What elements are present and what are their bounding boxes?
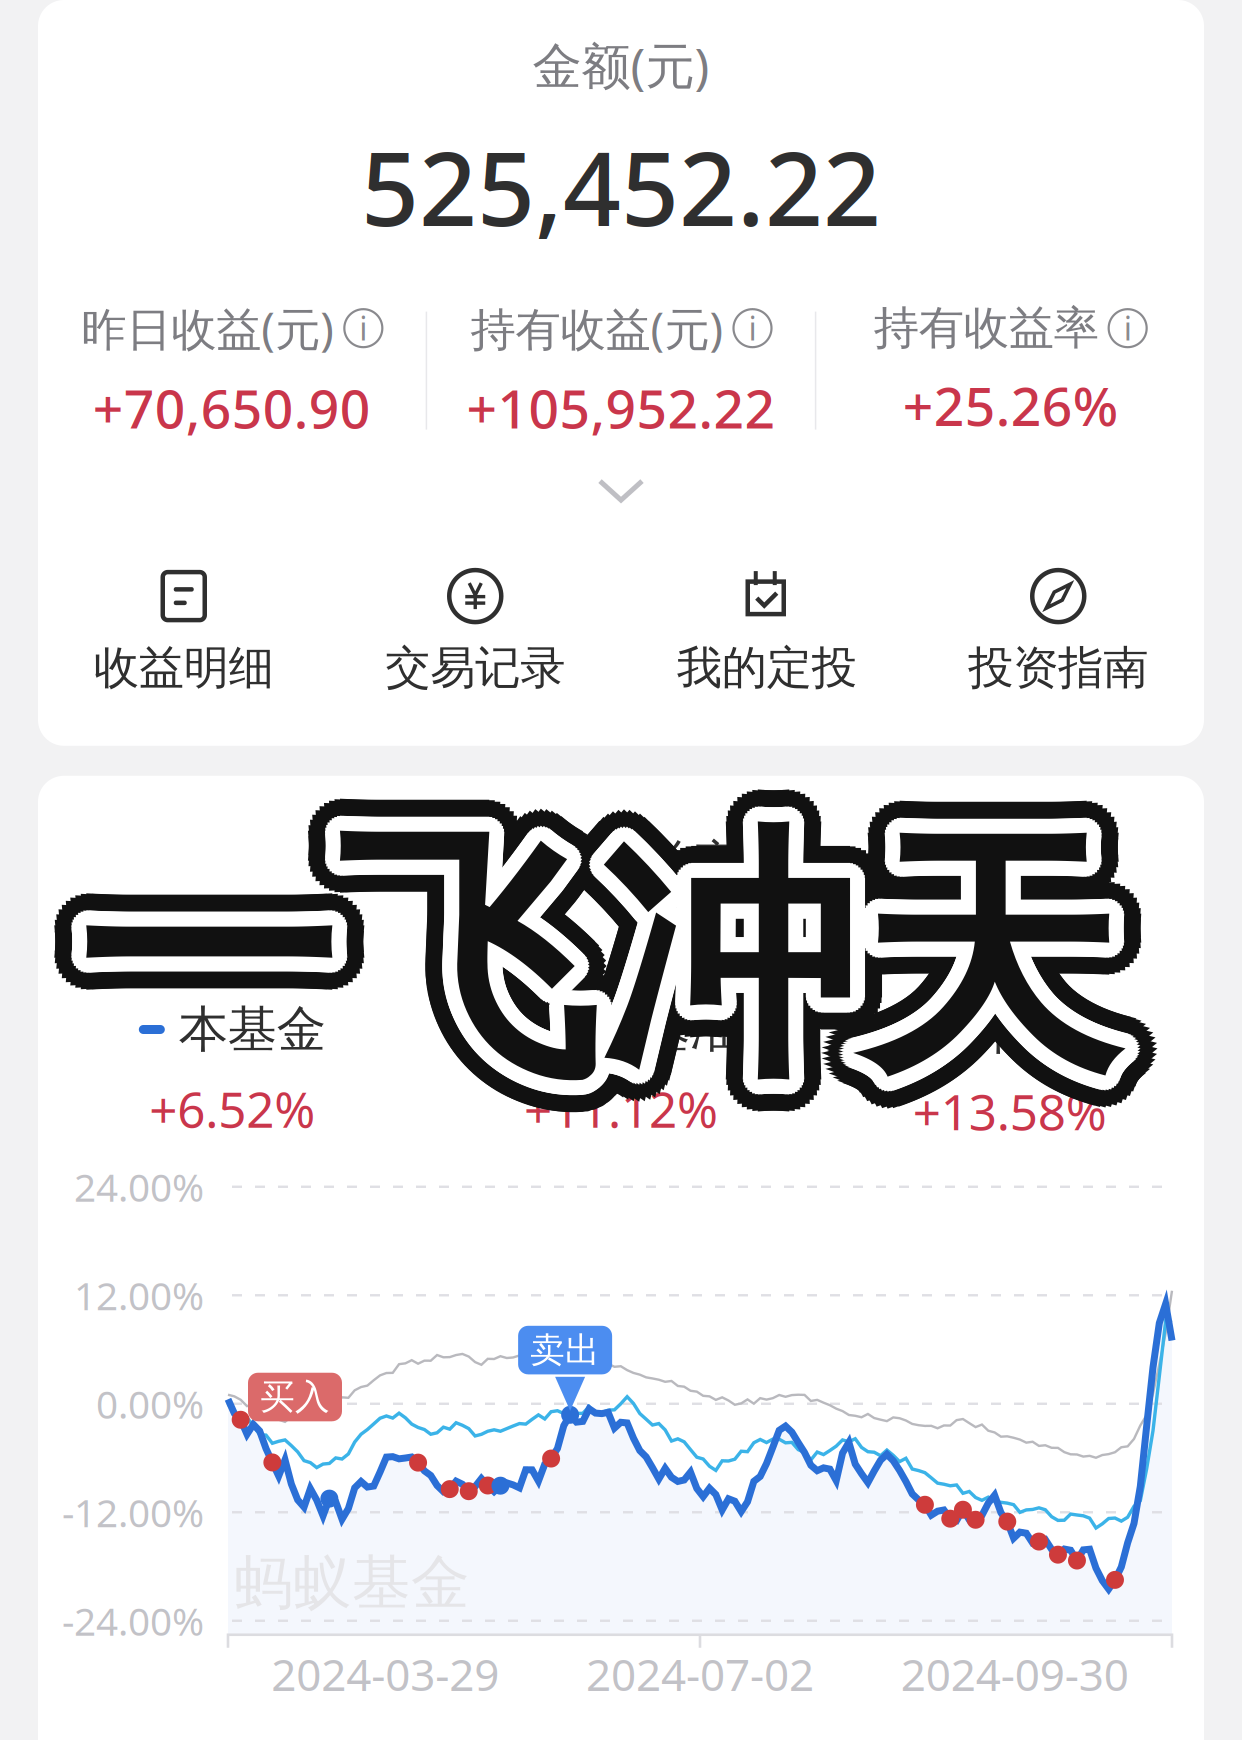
- staticText: 一飞冲天: [47, 784, 1091, 1105]
- staticText: 收益明细: [94, 640, 274, 696]
- staticText: 一飞冲天: [64, 799, 1108, 1120]
- staticText: 一飞冲天: [107, 800, 1151, 1121]
- staticText: 一飞冲天: [96, 775, 1140, 1096]
- staticText: 12.00%: [74, 1270, 204, 1321]
- staticText: 一飞冲天: [81, 797, 1125, 1118]
- button[interactable]: 收益明细: [38, 568, 329, 696]
- staticText: 2024-07-02: [586, 1645, 814, 1703]
- staticText: 一飞冲天: [96, 824, 1140, 1145]
- staticText: 一飞冲天: [69, 768, 1113, 1089]
- staticText: 一飞冲天: [99, 821, 1143, 1142]
- staticText: 一飞冲天: [85, 817, 1129, 1138]
- staticText: 一飞冲天: [98, 788, 1142, 1109]
- staticText: 一飞冲天: [79, 794, 1123, 1115]
- staticText: 一飞冲天: [47, 816, 1091, 1137]
- staticText: 一飞冲天: [65, 804, 1109, 1125]
- staticText: +70,650.90: [93, 372, 371, 443]
- staticText: 一飞冲天: [83, 787, 1127, 1108]
- staticText: 一飞冲天: [76, 789, 1120, 1110]
- staticText: 一飞冲天: [75, 768, 1119, 1089]
- staticText: 一飞冲天: [68, 801, 1112, 1122]
- staticText: 一飞冲天: [90, 803, 1134, 1124]
- staticText: 一飞冲天: [87, 823, 1131, 1144]
- staticText: 一飞冲天: [77, 803, 1121, 1124]
- staticText: 一飞冲天: [59, 772, 1103, 1093]
- staticText: 一飞冲天: [77, 774, 1121, 1095]
- staticText: 一飞冲天: [69, 831, 1113, 1152]
- staticText: -24.00%: [62, 1595, 204, 1646]
- staticText: 一飞冲天: [86, 811, 1130, 1132]
- staticText: 一飞冲天: [59, 788, 1103, 1109]
- staticText: 一飞冲天: [78, 806, 1122, 1127]
- staticText: 一飞冲天: [61, 794, 1105, 1115]
- staticText: 一飞冲天: [55, 817, 1099, 1138]
- staticText: 一飞冲天: [65, 796, 1109, 1117]
- staticText: 一飞冲天: [90, 787, 1134, 1108]
- staticText: 一飞冲天: [63, 823, 1107, 1144]
- staticText: 一飞冲天: [92, 820, 1136, 1141]
- staticText: 一飞冲天: [74, 807, 1118, 1128]
- staticText: +105,952.22: [466, 372, 775, 443]
- staticText: 一飞冲天: [87, 808, 1131, 1129]
- staticText: i: [1124, 307, 1132, 349]
- staticText: 一飞冲天: [65, 782, 1109, 1103]
- staticText: 我的定投: [677, 640, 857, 696]
- staticText: 一飞冲天: [83, 825, 1127, 1146]
- button[interactable]: 投资指南: [912, 568, 1204, 696]
- staticText: 一飞冲天: [67, 818, 1111, 1139]
- staticText: 一飞冲天: [69, 796, 1113, 1117]
- staticText: 一飞冲天: [78, 826, 1122, 1147]
- staticText: 2024-09-30: [901, 1645, 1129, 1703]
- staticText: 一飞冲天: [76, 797, 1120, 1118]
- staticText: 0.00%: [96, 1378, 204, 1429]
- staticText: 一飞冲天: [78, 798, 1122, 1119]
- staticText: 一飞冲天: [72, 806, 1116, 1127]
- staticText: 一飞冲天: [82, 801, 1126, 1122]
- staticText: 一飞冲天: [80, 819, 1124, 1140]
- staticText: 一飞冲天: [75, 800, 1119, 1121]
- button[interactable]: 我的定投: [621, 568, 912, 696]
- staticText: 一飞冲天: [72, 793, 1116, 1114]
- staticText: 一飞冲天: [77, 797, 1121, 1118]
- button[interactable]: 昨日收益(元): [38, 298, 426, 443]
- staticText: 一飞冲天: [72, 801, 1116, 1122]
- staticText: 一飞冲天: [81, 814, 1125, 1135]
- staticText: 一飞冲天: [50, 821, 1094, 1142]
- staticText: 一飞冲天: [81, 768, 1125, 1089]
- staticText: 一飞冲天: [87, 784, 1131, 1105]
- staticText: 一飞冲天: [83, 812, 1127, 1133]
- staticText: 一飞冲天: [54, 775, 1098, 1096]
- staticText: 一飞冲天: [106, 806, 1150, 1127]
- staticText: 一飞冲天: [67, 792, 1111, 1113]
- button[interactable]: 沪深300: [815, 997, 1204, 1144]
- staticText: 一飞冲天: [86, 830, 1130, 1151]
- staticText: i: [748, 307, 756, 349]
- staticText: 一飞冲天: [81, 803, 1125, 1124]
- button[interactable]: 交易记录: [329, 568, 621, 696]
- staticText: 一飞冲天: [62, 808, 1106, 1129]
- staticText: 一飞冲天: [71, 810, 1115, 1131]
- button[interactable]: 持有收益率: [816, 300, 1204, 441]
- staticText: 一飞冲天: [68, 825, 1112, 1146]
- staticText: 一飞冲天: [73, 803, 1117, 1124]
- staticText: 一飞冲天: [83, 808, 1127, 1129]
- staticText: 一飞冲天: [98, 812, 1142, 1133]
- staticText: i: [359, 307, 367, 349]
- staticText: 一飞冲天: [75, 815, 1119, 1136]
- button[interactable]: 持有收益(元): [427, 298, 815, 443]
- staticText: 一飞冲天: [64, 770, 1108, 1091]
- staticText: 2024-03-29: [271, 1645, 499, 1703]
- staticText: 一飞冲天: [71, 790, 1115, 1111]
- staticText: +6.52%: [149, 1076, 315, 1141]
- staticText: 一飞冲天: [62, 785, 1106, 1106]
- staticText: 一飞冲天: [69, 786, 1113, 1107]
- staticText: 一飞冲天: [69, 814, 1113, 1135]
- staticText: 一飞冲天: [64, 801, 1108, 1122]
- staticText: 一飞冲天: [73, 797, 1117, 1118]
- staticText: 一飞冲天: [49, 798, 1093, 1119]
- staticText: 一飞冲天: [78, 799, 1122, 1120]
- staticText: 525,452.22: [361, 119, 881, 254]
- staticText: 沪深300: [919, 997, 1101, 1062]
- staticText: 一飞冲天: [45, 789, 1089, 1110]
